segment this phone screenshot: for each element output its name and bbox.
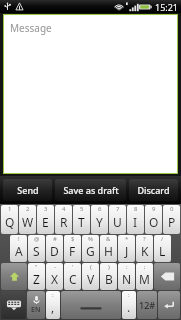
button[interactable]: : — [122, 291, 136, 319]
button[interactable]: Select input method — [1, 291, 26, 319]
staticText: 12# — [139, 299, 156, 311]
staticText: 1 — [8, 205, 12, 213]
button[interactable]: Space — [61, 291, 121, 319]
staticText: : — [126, 263, 128, 271]
button[interactable]: ! — [10, 235, 27, 262]
button[interactable]: ? — [136, 235, 153, 262]
button[interactable]: ) — [100, 263, 117, 290]
staticText: R — [60, 214, 68, 230]
staticText: 7 — [116, 205, 120, 213]
button[interactable]: % — [82, 235, 99, 262]
staticText: G — [86, 243, 95, 259]
button[interactable]: ' — [64, 263, 81, 290]
staticText: " — [35, 263, 38, 271]
staticText: . — [127, 299, 131, 315]
staticText: ( — [90, 263, 92, 271]
staticText: A — [15, 243, 23, 259]
button[interactable]: # — [46, 235, 63, 262]
button[interactable]: Save as draft — [55, 179, 126, 201]
staticText: @ — [34, 235, 40, 243]
staticText: F — [69, 243, 76, 259]
staticText: 0 — [170, 205, 174, 213]
staticText: N — [122, 271, 132, 287]
staticText: 2 — [26, 205, 30, 213]
staticText: 6 — [98, 205, 102, 213]
button[interactable]: Backspace — [154, 263, 180, 290]
staticText: ! — [18, 235, 20, 243]
staticText: 4 — [62, 205, 66, 213]
staticText: ? — [143, 235, 146, 243]
staticText: * — [125, 235, 129, 243]
staticText: C — [69, 271, 77, 287]
button[interactable]: 1 — [1, 205, 18, 234]
staticText: X — [51, 271, 59, 287]
button[interactable]: $ — [64, 235, 81, 262]
staticText: K — [141, 243, 149, 259]
staticText: P — [168, 214, 176, 230]
button[interactable]: Shift — [1, 263, 27, 290]
staticText: ' — [72, 263, 74, 271]
button[interactable]: : — [46, 291, 60, 319]
button[interactable]: ; — [136, 263, 153, 290]
button[interactable]: 7 — [109, 205, 126, 234]
staticText: Discard — [137, 184, 170, 196]
staticText: # — [53, 235, 57, 243]
staticText: 8 — [134, 205, 138, 213]
staticText: E — [42, 214, 49, 230]
staticText: D — [50, 243, 59, 259]
button[interactable]: @ — [28, 235, 45, 262]
staticText: J — [125, 243, 129, 259]
staticText: - — [54, 263, 56, 271]
button[interactable]: 5 — [73, 205, 90, 234]
staticText: B — [105, 271, 113, 287]
staticText: ) — [108, 263, 110, 271]
staticText: U — [113, 214, 122, 230]
staticText: $ — [71, 235, 75, 243]
button[interactable]: - — [46, 263, 63, 290]
staticText: T — [78, 214, 85, 230]
staticText: & — [106, 235, 111, 243]
staticText: , — [51, 299, 55, 315]
button[interactable]: 8 — [127, 205, 144, 234]
button[interactable]: ( — [82, 263, 99, 290]
button[interactable]: Voice input and language — [27, 291, 45, 319]
button[interactable]: 6 — [91, 205, 108, 234]
staticText: Save as draft — [63, 184, 119, 196]
staticText: 9 — [152, 205, 156, 213]
button[interactable]: & — [100, 235, 117, 262]
button[interactable]: / — [154, 235, 171, 262]
staticText: O — [149, 214, 159, 230]
staticText: % — [88, 235, 93, 243]
button[interactable]: Enter — [158, 291, 180, 319]
button[interactable]: Message — [4, 15, 177, 173]
button[interactable]: 12# — [137, 291, 157, 319]
staticText: L — [159, 243, 166, 259]
button[interactable]: 0 — [163, 205, 180, 234]
button[interactable]: 2 — [19, 205, 36, 234]
button[interactable]: 3 — [37, 205, 54, 234]
button[interactable]: 4 — [55, 205, 72, 234]
staticText: / — [161, 235, 164, 243]
button[interactable]: 9 — [145, 205, 162, 234]
button[interactable]: Discard — [129, 179, 178, 201]
staticText: : — [52, 291, 54, 299]
button[interactable]: : — [118, 263, 135, 290]
staticText: H — [104, 243, 113, 259]
button[interactable]: " — [28, 263, 45, 290]
staticText: Send — [17, 184, 39, 196]
button[interactable]: * — [118, 235, 135, 262]
staticText: : — [128, 291, 130, 299]
staticText: 5 — [80, 205, 84, 213]
button[interactable]: Send — [3, 179, 52, 201]
staticText: Message — [10, 21, 52, 35]
staticText: Z — [33, 271, 40, 287]
staticText: Q — [5, 214, 15, 230]
staticText: W — [22, 214, 34, 230]
staticText: Y — [96, 214, 103, 230]
staticText: M — [139, 271, 150, 287]
staticText: 3 — [44, 205, 48, 213]
staticText: 15:21 — [155, 1, 179, 13]
staticText: I — [133, 214, 138, 230]
staticText: ; — [144, 263, 146, 271]
staticText: V — [87, 271, 95, 287]
